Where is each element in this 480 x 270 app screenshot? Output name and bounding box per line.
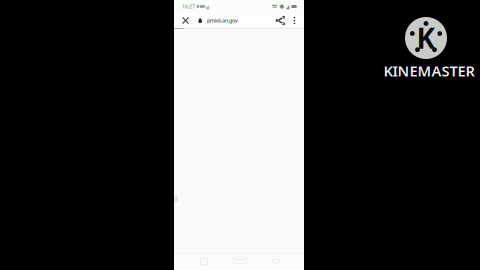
button[interactable]: Recents [196,255,212,269]
button[interactable]: Back [268,255,284,269]
staticText: KINEMASTER [383,61,474,80]
staticText: pmkisan.gov [207,17,238,24]
button[interactable]: Close tab [178,13,195,28]
button[interactable]: Home [232,255,248,269]
button[interactable]: More options [289,13,301,28]
staticText: 16:27 [182,3,195,10]
staticText: K [416,19,435,57]
button[interactable]: Share [273,13,289,28]
